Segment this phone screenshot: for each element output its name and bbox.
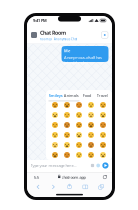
button[interactable]: Animals (63, 93, 79, 98)
button[interactable]: Room info (101, 32, 108, 38)
button[interactable]: Emoji (100, 132, 106, 138)
button[interactable]: Emoji (100, 122, 106, 128)
button[interactable]: Forward (46, 185, 62, 189)
button[interactable]: Emoji (64, 102, 70, 108)
staticText: AA (33, 174, 39, 180)
button[interactable]: Emoji (52, 122, 58, 128)
button[interactable]: Emoji (100, 102, 106, 108)
staticText: Food (83, 93, 91, 98)
button[interactable]: Smileys (48, 93, 63, 98)
staticText: Travel (97, 93, 108, 98)
staticText: Anonymous Chat (54, 37, 77, 41)
button[interactable]: Emoji (64, 152, 70, 158)
staticText: Animals (64, 93, 79, 98)
button[interactable]: Emoji (88, 112, 94, 118)
button[interactable]: Emoji (64, 112, 70, 118)
button[interactable]: Share (62, 184, 77, 189)
staticText: Type your message here... (30, 163, 76, 168)
button[interactable]: Page settings (32, 174, 41, 180)
button[interactable]: Emoji (76, 142, 82, 148)
button[interactable]: Emoji (96, 164, 100, 167)
button[interactable]: Emoji (100, 142, 106, 148)
button[interactable]: Food (79, 93, 94, 98)
button[interactable]: Emoji (52, 132, 58, 138)
button[interactable]: Emoji (100, 152, 106, 158)
button[interactable]: Emoji (52, 142, 58, 148)
staticText: Me (64, 48, 70, 53)
button[interactable]: Tabs (93, 184, 109, 189)
button[interactable]: Travel (94, 93, 110, 98)
button[interactable]: Emoji (88, 102, 94, 108)
button[interactable]: Emoji (52, 102, 58, 108)
button[interactable]: Emoji (64, 142, 70, 148)
button[interactable]: Bookmarks (77, 185, 93, 189)
button[interactable]: Back (30, 185, 46, 189)
staticText: Room ID (40, 37, 52, 41)
button[interactable]: Emoji (52, 112, 58, 118)
button[interactable]: Emoji (88, 152, 94, 158)
button[interactable]: Emoji (76, 112, 82, 118)
staticText: Smileys (49, 93, 63, 98)
button[interactable]: Emoji (52, 152, 58, 158)
button[interactable]: Room avatar (31, 32, 37, 38)
button[interactable]: Emoji (88, 142, 94, 148)
button[interactable]: Emoji (76, 152, 82, 158)
button[interactable]: Emoji (76, 132, 82, 138)
button[interactable]: Emoji (88, 122, 94, 128)
button[interactable]: Emoji (64, 122, 70, 128)
staticText: Anonymous-xfsa8 has joined the chat (64, 55, 102, 65)
staticText: Chat Room (40, 29, 66, 36)
staticText: 9:41 PM (33, 18, 47, 23)
button[interactable]: Emoji (76, 102, 82, 108)
button[interactable]: Emoji (76, 122, 82, 128)
button[interactable]: Emoji (88, 132, 94, 138)
staticText: chatroom.app (62, 174, 86, 180)
button[interactable]: Emoji (100, 112, 106, 118)
button[interactable]: Emoji (64, 132, 70, 138)
button[interactable]: Reload (103, 175, 107, 179)
button[interactable]: Send (102, 162, 108, 169)
